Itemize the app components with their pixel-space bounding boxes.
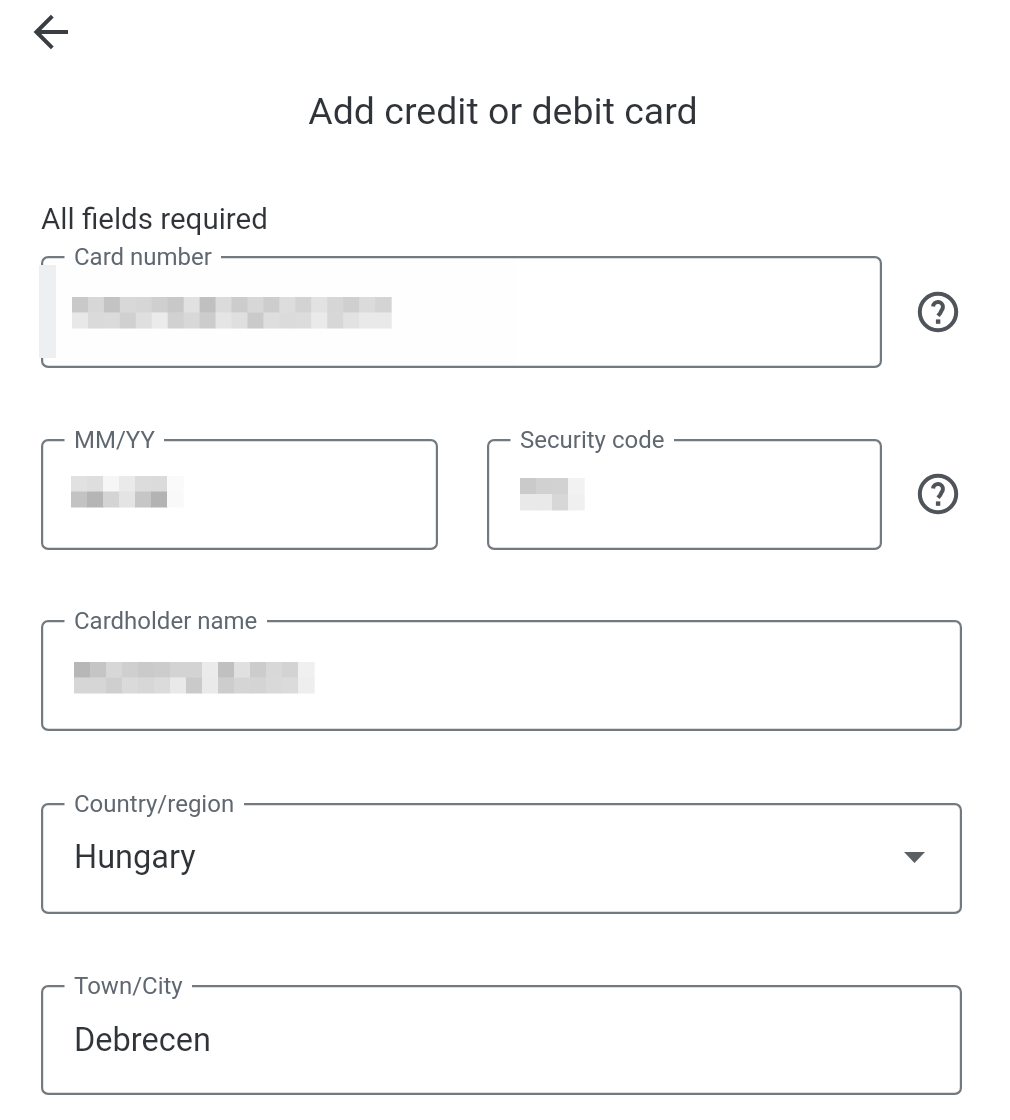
staticText: Debrecen — [74, 1021, 211, 1059]
staticText: Card number — [74, 243, 212, 271]
staticText: Cardholder name — [74, 607, 258, 635]
button[interactable]: Cardholder name — [41, 620, 962, 731]
staticText: Town/City — [74, 972, 183, 1000]
button[interactable]: Navigate back — [2, 0, 98, 64]
staticText: Security code — [520, 426, 665, 454]
button[interactable]: Help — [910, 466, 966, 522]
staticText: All fields required — [41, 202, 268, 237]
staticText: Add credit or debit card — [0, 89, 1008, 133]
button[interactable]: Help — [910, 284, 966, 340]
button[interactable]: Card number — [41, 256, 882, 368]
staticText: Country/region — [74, 790, 235, 818]
staticText: Hungary — [74, 838, 196, 876]
staticText: MM/YY — [74, 426, 155, 454]
button[interactable]: Country/region — [41, 803, 962, 914]
button[interactable]: Security code — [487, 439, 882, 550]
button[interactable]: Town/City — [41, 985, 962, 1095]
button[interactable]: MM/YY — [41, 439, 438, 550]
